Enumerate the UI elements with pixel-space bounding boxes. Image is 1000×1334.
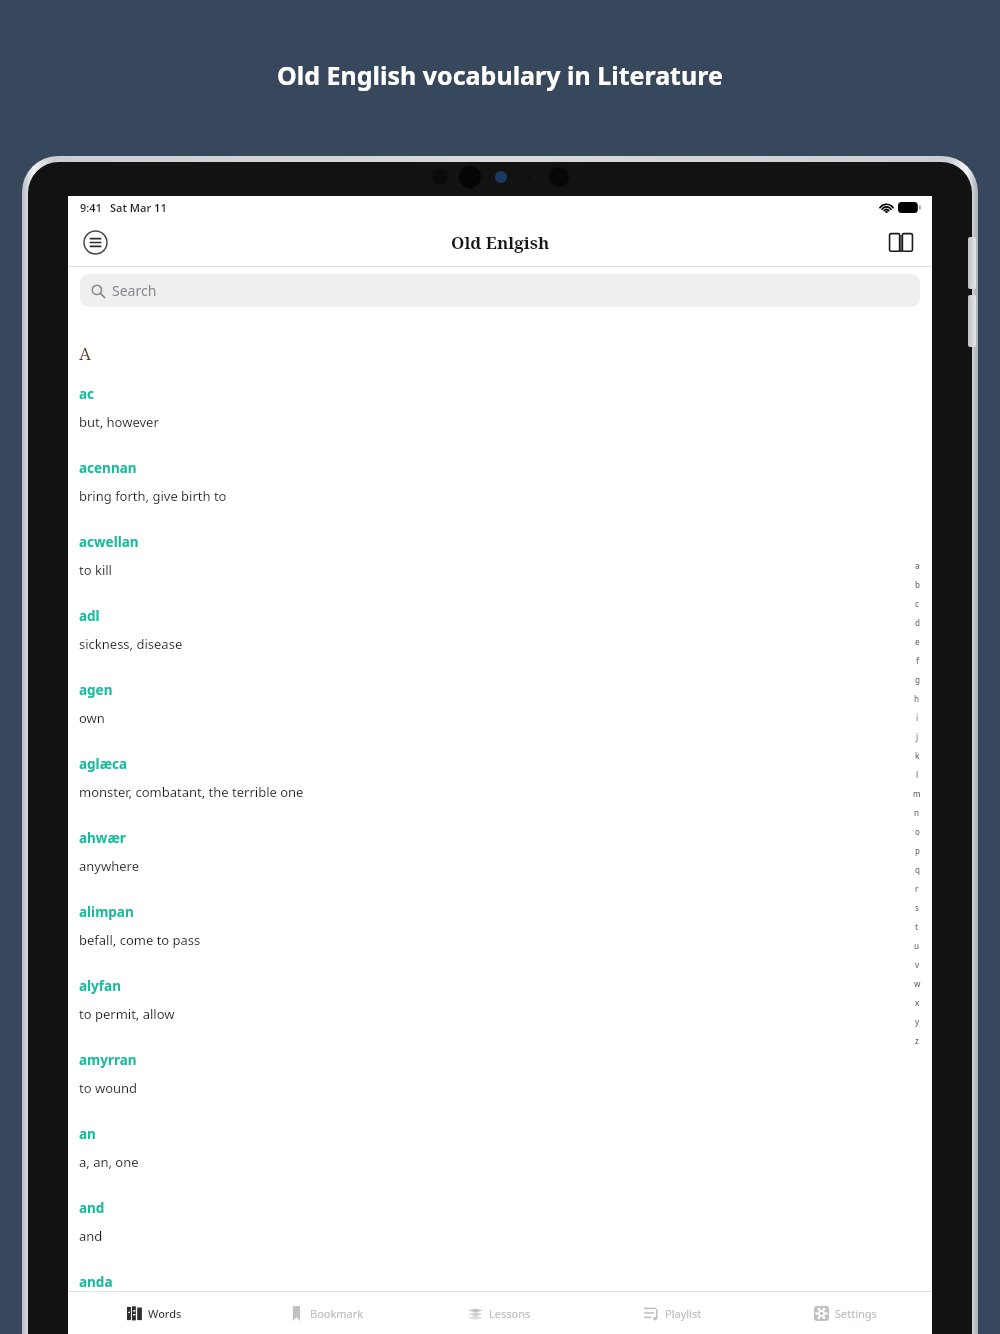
button[interactable]: ac: [68, 385, 932, 431]
staticText: q: [915, 864, 920, 875]
button[interactable]: and: [68, 1199, 932, 1245]
staticText: r: [915, 883, 919, 894]
button[interactable]: y: [909, 1012, 925, 1031]
staticText: adl: [79, 607, 100, 625]
staticText: Words: [148, 1306, 182, 1321]
staticText: an: [79, 1125, 96, 1143]
staticText: and: [79, 1227, 103, 1245]
staticText: z: [915, 1035, 919, 1046]
staticText: ahwær: [79, 829, 126, 847]
button[interactable]: Bookmark: [240, 1292, 413, 1334]
staticText: h: [914, 693, 920, 704]
staticText: to kill: [79, 561, 112, 579]
staticText: x: [915, 997, 920, 1008]
staticText: w: [914, 978, 921, 989]
staticText: Lessons: [489, 1306, 531, 1321]
button[interactable]: z: [909, 1031, 925, 1050]
button[interactable]: an: [68, 1125, 932, 1171]
staticText: anywhere: [79, 857, 139, 875]
button[interactable]: p: [909, 841, 925, 860]
staticText: j: [916, 731, 919, 742]
button[interactable]: e: [909, 632, 925, 651]
staticText: agen: [79, 681, 113, 699]
button[interactable]: ahwær: [68, 829, 932, 875]
staticText: alyfan: [79, 977, 121, 995]
staticText: befall, come to pass: [79, 931, 201, 949]
staticText: 9:41: [80, 200, 102, 215]
button[interactable]: d: [909, 613, 925, 632]
staticText: y: [915, 1016, 920, 1027]
button[interactable]: alimpan: [68, 903, 932, 949]
staticText: l: [916, 769, 919, 780]
button[interactable]: r: [909, 879, 925, 898]
button[interactable]: alyfan: [68, 977, 932, 1023]
staticText: k: [915, 750, 920, 761]
button[interactable]: n: [909, 803, 925, 822]
button[interactable]: j: [909, 727, 925, 746]
staticText: a: [915, 560, 920, 571]
staticText: m: [913, 788, 921, 799]
button[interactable]: agen: [68, 681, 932, 727]
staticText: acennan: [79, 459, 137, 477]
button[interactable]: Menu: [76, 223, 114, 261]
button[interactable]: m: [909, 784, 925, 803]
staticText: amyrran: [79, 1051, 137, 1069]
staticText: s: [915, 902, 919, 913]
button[interactable]: acwellan: [68, 533, 932, 579]
staticText: a, an, one: [79, 1153, 139, 1171]
staticText: Playlist: [665, 1306, 702, 1321]
button[interactable]: u: [909, 936, 925, 955]
staticText: b: [915, 579, 920, 590]
staticText: ac: [79, 385, 95, 403]
staticText: aglæca: [79, 755, 128, 773]
staticText: anda: [79, 1273, 113, 1291]
button[interactable]: s: [909, 898, 925, 917]
staticText: e: [915, 636, 920, 647]
staticText: Bookmark: [310, 1306, 364, 1321]
staticText: v: [915, 959, 920, 970]
staticText: monster, combatant, the terrible one: [79, 783, 304, 801]
button[interactable]: i: [909, 708, 925, 727]
button[interactable]: w: [909, 974, 925, 993]
button[interactable]: Search: [80, 274, 920, 307]
button[interactable]: Settings: [759, 1292, 932, 1334]
staticText: Sat Mar 11: [110, 200, 167, 215]
button[interactable]: l: [909, 765, 925, 784]
staticText: to permit, allow: [79, 1005, 175, 1023]
button[interactable]: Lessons: [413, 1292, 586, 1334]
button[interactable]: b: [909, 575, 925, 594]
button[interactable]: v: [909, 955, 925, 974]
button[interactable]: amyrran: [68, 1051, 932, 1097]
button[interactable]: x: [909, 993, 925, 1012]
staticText: acwellan: [79, 533, 139, 551]
button[interactable]: Playlist: [586, 1292, 759, 1334]
button[interactable]: q: [909, 860, 925, 879]
button[interactable]: g: [909, 670, 925, 689]
staticText: o: [915, 826, 920, 837]
button[interactable]: t: [909, 917, 925, 936]
staticText: Old Enlgish: [451, 231, 550, 254]
button[interactable]: k: [909, 746, 925, 765]
button[interactable]: o: [909, 822, 925, 841]
staticText: alimpan: [79, 903, 134, 921]
staticText: Settings: [835, 1306, 877, 1321]
staticText: but, however: [79, 413, 159, 431]
staticText: t: [915, 921, 919, 932]
staticText: Old English vocabulary in Literature: [277, 58, 723, 92]
button[interactable]: acennan: [68, 459, 932, 505]
staticText: u: [914, 940, 920, 951]
button[interactable]: aglæca: [68, 755, 932, 801]
button[interactable]: Open book: [882, 223, 920, 261]
button[interactable]: c: [909, 594, 925, 613]
button[interactable]: Words: [68, 1292, 240, 1334]
button[interactable]: anda: [68, 1273, 932, 1291]
staticText: bring forth, give birth to: [79, 487, 227, 505]
button[interactable]: h: [909, 689, 925, 708]
staticText: g: [915, 674, 920, 685]
button[interactable]: f: [909, 651, 925, 670]
button[interactable]: adl: [68, 607, 932, 653]
button[interactable]: a: [909, 556, 925, 575]
staticText: A: [79, 342, 91, 365]
staticText: Search: [112, 281, 157, 300]
staticText: to wound: [79, 1079, 138, 1097]
